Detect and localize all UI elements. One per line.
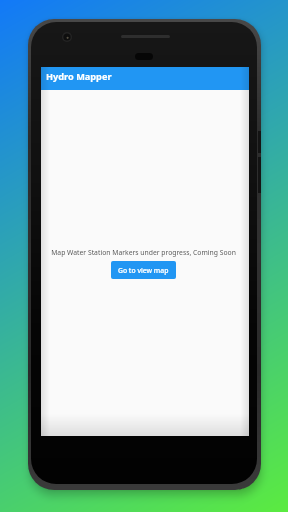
staticText: Hydro Mapper: [46, 70, 112, 83]
button[interactable]: Go to view map: [111, 261, 176, 279]
staticText: Map Water Station Markers under progress…: [51, 248, 236, 257]
staticText: Go to view map: [118, 266, 169, 275]
